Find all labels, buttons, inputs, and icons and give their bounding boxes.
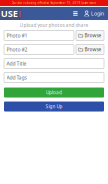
button[interactable]: Login (84, 7, 104, 20)
button[interactable]: Browse (76, 44, 104, 54)
staticText: ! (18, 7, 21, 20)
staticText: Add Title (7, 60, 27, 67)
staticText: Upload (46, 89, 62, 96)
staticText: Photo #2 (7, 46, 28, 53)
button[interactable]: Menu (70, 7, 80, 20)
staticText: Sign Up (45, 103, 62, 110)
staticText: Login (91, 10, 104, 17)
staticText: Our site is closing effective September … (11, 1, 96, 5)
staticText: Browse (84, 46, 101, 53)
button[interactable]: Photo #2 (4, 44, 74, 54)
button[interactable]: Upload (4, 87, 104, 97)
staticText: Add Tags (7, 74, 27, 81)
button[interactable]: USE! home (0, 7, 22, 20)
button[interactable]: Photo #1 (4, 30, 74, 40)
button[interactable]: Sign Up (4, 101, 104, 111)
staticText: Browse (84, 32, 101, 39)
button[interactable]: Add Title (4, 58, 104, 68)
button[interactable]: Browse (76, 30, 104, 40)
staticText: USE (1, 7, 18, 20)
staticText: Upload your photos and share (19, 22, 88, 28)
button[interactable]: Add Tags (4, 72, 104, 82)
staticText: Photo #1 (7, 32, 28, 39)
